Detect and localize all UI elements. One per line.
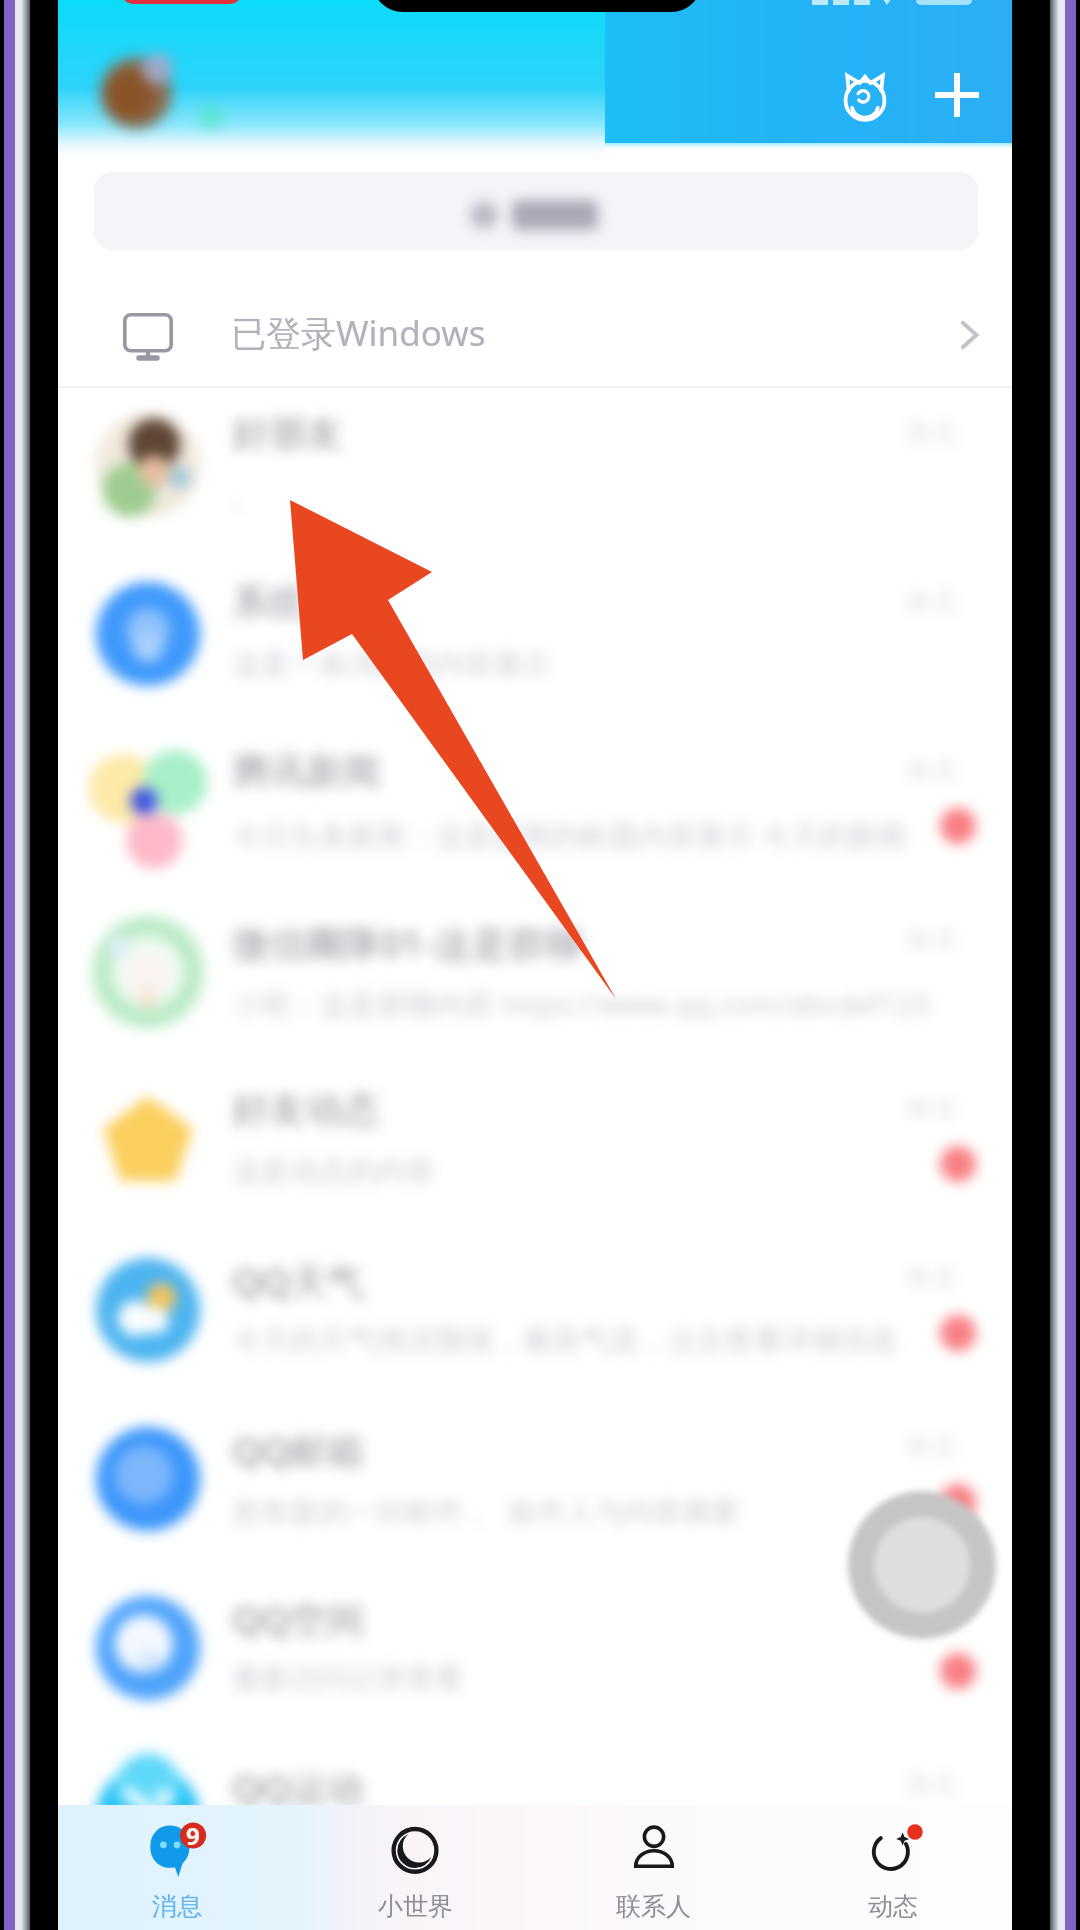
staticText: 您有新的一封邮件， 收件人与内容摘要 bbox=[232, 1491, 932, 1531]
staticText: 这是一条消息的内容展示 bbox=[232, 646, 932, 683]
staticText: 好朋友 bbox=[232, 410, 343, 457]
button[interactable]: 动态 bbox=[773, 1805, 1012, 1930]
staticText: 腾讯新闻 bbox=[232, 748, 380, 795]
staticText: 今日头条新闻：这是新闻的标题内容展示 今天的新闻 bbox=[232, 815, 932, 855]
staticText: 小明：这是群聊内容 https://www.qq.com/abcdef123 bbox=[232, 984, 932, 1024]
staticText: 最新访问记录查看 bbox=[232, 1660, 932, 1697]
staticText: 消息 bbox=[152, 1891, 202, 1922]
staticText: 好友动态 bbox=[232, 1086, 380, 1133]
staticText: 。 bbox=[232, 477, 932, 514]
staticText: QQ邮箱 bbox=[232, 1424, 365, 1475]
button[interactable]: Add bbox=[917, 55, 997, 135]
staticText: 联系人 bbox=[616, 1891, 691, 1922]
button[interactable]: 9 bbox=[58, 1805, 296, 1930]
button[interactable]: 已登录Windows bbox=[58, 288, 1012, 388]
button[interactable]: QQ Pet bbox=[825, 55, 905, 135]
staticText: 动态 bbox=[868, 1891, 918, 1922]
staticText: 今天的天气情况预报，最高气温，点击查看详细信息 bbox=[232, 1322, 932, 1359]
staticText: QQ天气 bbox=[232, 1255, 365, 1306]
button[interactable]: Search bbox=[94, 172, 978, 250]
staticText: 昨天 bbox=[908, 1601, 958, 1632]
button[interactable]: 联系人 bbox=[534, 1805, 773, 1930]
button[interactable]: 小世界 bbox=[296, 1805, 534, 1930]
staticText: QQ运动 bbox=[232, 1762, 365, 1813]
staticText: QQ空间 bbox=[232, 1593, 365, 1644]
staticText: 已登录Windows bbox=[231, 309, 486, 357]
staticText: 这是动态的内容 bbox=[232, 1153, 932, 1190]
staticText: 9 bbox=[186, 1819, 200, 1852]
staticText: 小世界 bbox=[378, 1891, 453, 1922]
staticText: 微信團隊01-这是群聊 bbox=[232, 917, 583, 968]
staticText: 系统 bbox=[232, 579, 306, 626]
